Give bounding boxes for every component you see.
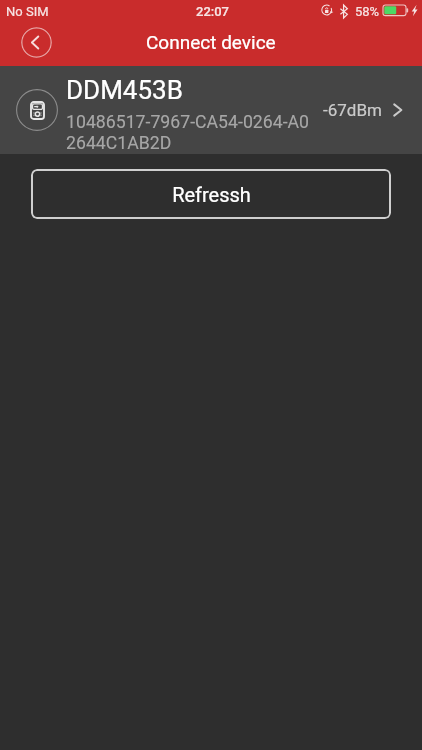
staticText: -67dBm [323,100,382,120]
staticText: 58% [355,4,380,19]
staticText: No SIM [6,4,49,19]
staticText: 10486517-7967-CA54-0264-A0 2644C1AB2D [66,112,310,153]
staticText: Connect device [146,31,276,53]
staticText: DDM453B [66,75,183,105]
staticText: 22:07 [196,4,230,19]
staticText: Refressh [172,183,251,206]
button[interactable]: DDM453B [0,66,422,154]
button[interactable]: Back [21,27,52,58]
button[interactable]: Refressh [31,169,391,219]
